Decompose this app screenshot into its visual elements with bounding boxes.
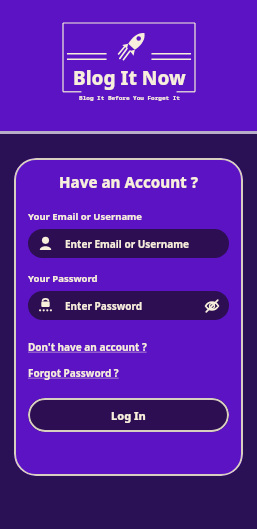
button[interactable]: Log In <box>28 398 229 432</box>
staticText: Enter Email or Username <box>65 237 189 251</box>
staticText: Don't have an account ? <box>28 340 147 354</box>
button[interactable]: Forgot Password ? <box>28 366 119 380</box>
staticText: Blog It Now <box>73 65 186 91</box>
staticText: Blog It Before You Forget It <box>79 94 180 102</box>
staticText: Your Email or Username <box>28 210 143 223</box>
button[interactable]: Enter Email or Username <box>28 229 229 258</box>
staticText: Enter Password <box>65 299 143 313</box>
staticText: Log In <box>111 408 146 423</box>
button[interactable]: Show password <box>203 297 220 314</box>
button[interactable]: Don't have an account ? <box>28 340 147 354</box>
staticText: Have an Account ? <box>59 172 198 192</box>
button[interactable]: Enter Password <box>28 291 229 320</box>
staticText: Your Password <box>28 272 98 285</box>
staticText: Forgot Password ? <box>28 366 119 380</box>
